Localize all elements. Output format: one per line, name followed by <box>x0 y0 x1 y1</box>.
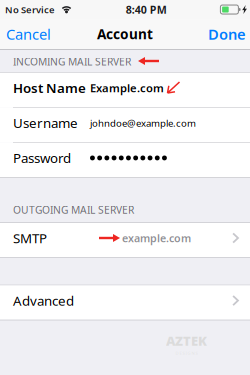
staticText: INCOMING MAIL SERVER <box>13 55 131 69</box>
staticText: No Service <box>5 3 55 16</box>
staticText: Done <box>208 24 246 44</box>
staticText: Account <box>97 25 153 43</box>
staticText: OUTGOING MAIL SERVER <box>13 203 134 217</box>
staticText: Example.com <box>90 80 164 96</box>
button[interactable]: Advanced <box>0 285 250 320</box>
button[interactable]: Done <box>204 20 250 48</box>
button[interactable]: SMTP <box>0 223 250 257</box>
staticText: SMTP <box>13 229 47 247</box>
staticText: Password <box>13 149 71 167</box>
staticText: Advanced <box>13 291 74 310</box>
staticText: 8:40 PM <box>126 2 167 17</box>
staticText: Username <box>13 114 78 132</box>
staticText: example.com <box>122 231 191 245</box>
staticText: AZTEK <box>166 332 207 350</box>
button[interactable]: Cancel <box>0 20 57 48</box>
staticText: johndoe@example.com <box>90 116 196 129</box>
staticText: Cancel <box>6 24 51 44</box>
staticText: Host Name <box>13 79 86 97</box>
